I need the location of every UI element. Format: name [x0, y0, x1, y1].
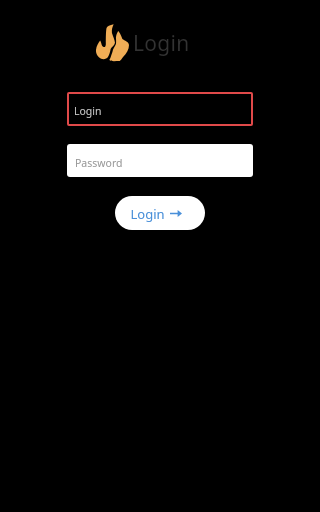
staticText: Password — [75, 156, 123, 170]
button[interactable]: Login — [67, 92, 253, 126]
button[interactable]: Password — [67, 144, 253, 177]
staticText: Login — [133, 29, 190, 58]
button[interactable]: Login — [115, 196, 205, 230]
staticText: Login — [74, 104, 102, 118]
staticText: Login — [130, 205, 165, 223]
